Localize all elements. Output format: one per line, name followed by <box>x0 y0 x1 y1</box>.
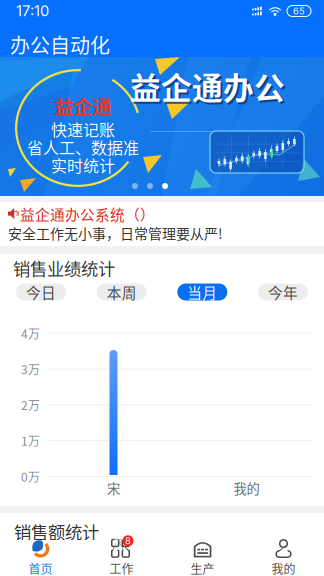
staticText: 我的 <box>233 478 259 498</box>
staticText: 工作 <box>109 560 133 576</box>
button[interactable]: 我的 <box>243 540 324 576</box>
staticText: 当月 <box>187 281 217 303</box>
staticText: 今年 <box>268 281 298 303</box>
staticText: 安全工作无小事，日常管理要从严! <box>8 223 223 243</box>
staticText: 销售业绩统计 <box>13 255 115 281</box>
button[interactable]: 本周 <box>97 283 147 300</box>
staticText: 省人工、数据准 <box>27 135 139 159</box>
staticText: 4万 <box>21 324 40 342</box>
button[interactable]: 生产 <box>162 540 243 576</box>
staticText: 益企通 <box>54 92 111 120</box>
staticText: 宋 <box>107 478 120 498</box>
button[interactable]: 当月 <box>177 283 227 300</box>
staticText: 17:10 <box>16 2 49 20</box>
staticText: 0万 <box>21 468 40 485</box>
button[interactable]: 8 <box>81 540 162 576</box>
staticText: 益企通办公 <box>132 66 287 110</box>
button[interactable]: 益企通办公系统（） <box>0 202 324 246</box>
staticText: 销售额统计 <box>14 519 99 544</box>
staticText: 本周 <box>107 281 137 303</box>
button[interactable]: 今日 <box>16 283 66 300</box>
staticText: 今日 <box>26 281 56 303</box>
staticText: 益企通办公 <box>130 64 285 108</box>
staticText: 2万 <box>21 396 40 413</box>
staticText: 实时统计 <box>51 153 115 177</box>
staticText: 8 <box>125 535 131 546</box>
staticText: 3万 <box>21 360 40 378</box>
staticText: 生产 <box>190 560 214 576</box>
button[interactable]: 今年 <box>258 283 308 300</box>
staticText: 益企通办公系统（） <box>20 203 155 225</box>
button[interactable]: 首页 <box>0 540 81 576</box>
staticText: 我的 <box>271 560 295 576</box>
staticText: 快速记账 <box>51 117 115 141</box>
staticText: 办公自动化 <box>10 30 110 59</box>
staticText: 1万 <box>21 432 40 449</box>
staticText: 65 <box>293 5 305 17</box>
staticText: 首页 <box>28 560 52 576</box>
